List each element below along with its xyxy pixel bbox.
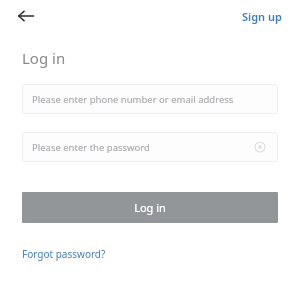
button[interactable]: Please enter phone number or email addre… (22, 84, 278, 114)
staticText: Please enter the password (32, 141, 150, 154)
staticText: Log in (22, 48, 66, 68)
button[interactable]: Log in (22, 192, 278, 223)
button[interactable]: Back (12, 2, 40, 30)
staticText: Sign up (242, 9, 282, 24)
button[interactable]: Sign up (224, 5, 300, 28)
staticText: Log in (134, 200, 166, 215)
staticText: Please enter phone number or email addre… (32, 93, 234, 106)
button[interactable]: Show password (252, 139, 268, 155)
staticText: Forgot password? (22, 247, 106, 261)
button[interactable]: Please enter the password (22, 132, 278, 162)
button[interactable]: Forgot password? (14, 243, 114, 265)
